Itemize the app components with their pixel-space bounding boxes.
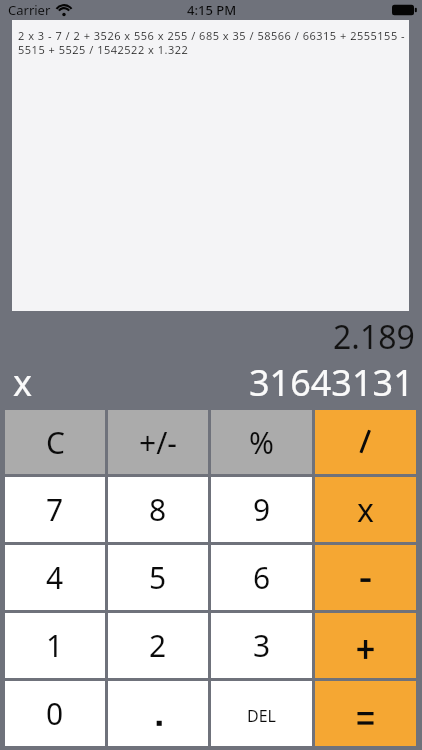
button[interactable]: 5 [108, 545, 208, 610]
staticText: 4 [46, 557, 64, 598]
staticText: 1 [46, 625, 64, 666]
staticText: 2 x 3 - 7 / 2 + 3526 x 556 x 255 / 685 x… [18, 28, 406, 57]
staticText: C [46, 422, 65, 463]
staticText: x [357, 488, 374, 532]
staticText: 7 [46, 489, 64, 530]
button[interactable]: C [5, 410, 105, 474]
staticText: x [13, 358, 33, 407]
staticText: 5 [149, 557, 167, 598]
button[interactable] [108, 681, 208, 746]
staticText: 8 [149, 489, 167, 530]
button[interactable]: 6 [211, 545, 312, 610]
staticText: 0 [46, 693, 64, 734]
staticText: 3 [253, 625, 271, 666]
staticText: +/- [139, 422, 177, 463]
button[interactable]: DEL [211, 681, 312, 746]
staticText: 2.189 [333, 315, 415, 359]
button[interactable]: % [211, 410, 312, 474]
button[interactable] [315, 545, 416, 610]
staticText: 4:15 PM [187, 1, 237, 19]
staticText: % [249, 422, 274, 463]
button[interactable] [315, 613, 416, 678]
button[interactable]: 8 [108, 477, 208, 542]
button[interactable]: 0 [5, 681, 105, 746]
button[interactable]: 7 [5, 477, 105, 542]
button[interactable]: 9 [211, 477, 312, 542]
button[interactable]: 1 [5, 613, 105, 678]
button[interactable]: 3 [211, 613, 312, 678]
button[interactable] [315, 681, 416, 746]
staticText: 9 [253, 489, 271, 530]
staticText: 2 [149, 625, 167, 666]
button[interactable]: 2 [108, 613, 208, 678]
staticText: 6 [253, 557, 271, 598]
staticText: DEL [247, 705, 276, 727]
button[interactable] [315, 410, 416, 474]
button[interactable]: +/- [108, 410, 208, 474]
button[interactable]: x [315, 477, 416, 542]
staticText: 31643131 [249, 358, 414, 407]
staticText: Carrier [8, 1, 51, 19]
button[interactable]: 4 [5, 545, 105, 610]
